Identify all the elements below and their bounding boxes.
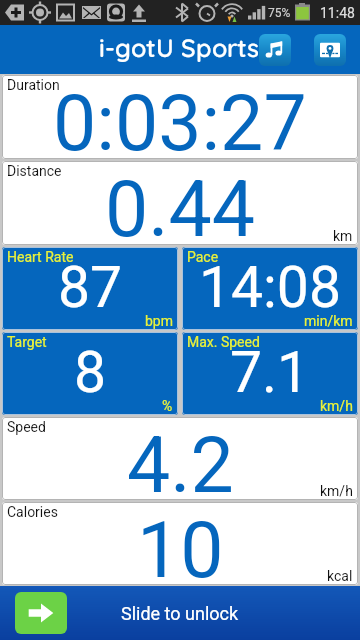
button[interactable]: Heart Rate — [2, 247, 178, 330]
button[interactable]: Calories — [2, 502, 358, 585]
staticText: 0:03:27 — [53, 79, 307, 159]
button[interactable]: Max. Speed — [182, 332, 358, 415]
staticText: 4.2 — [127, 421, 234, 500]
staticText: bpm — [145, 313, 173, 329]
staticText: km — [333, 228, 353, 244]
staticText: Pace — [187, 249, 219, 265]
staticText: 14:08 — [199, 254, 341, 321]
button[interactable]: Duration — [2, 75, 358, 159]
staticText: 87 — [58, 254, 123, 321]
staticText: km/h — [320, 398, 353, 414]
staticText: % — [162, 398, 173, 414]
staticText: Slide to unlock — [121, 603, 239, 624]
staticText: min/km — [304, 313, 353, 329]
staticText: 11:48 — [320, 5, 355, 21]
staticText: 8 — [74, 339, 107, 406]
staticText: Heart Rate — [7, 249, 74, 265]
button[interactable]: Slide to unlock — [0, 586, 360, 640]
staticText: km/h — [320, 483, 353, 499]
button[interactable]: Map — [314, 34, 346, 66]
staticText: 10 — [137, 506, 224, 585]
staticText: Duration — [7, 77, 60, 93]
staticText: Distance — [7, 163, 62, 179]
button[interactable]: Pace — [182, 247, 358, 330]
staticText: Target — [7, 334, 47, 350]
staticText: 7.1 — [230, 339, 310, 406]
staticText: Speed — [7, 419, 46, 435]
staticText: kcal — [327, 568, 353, 584]
button[interactable]: Music — [259, 34, 291, 66]
staticText: 75% — [268, 6, 291, 20]
button[interactable]: Target — [2, 332, 178, 415]
button[interactable]: Slide to unlock — [15, 592, 67, 634]
staticText: 0.44 — [105, 165, 256, 245]
button[interactable]: Speed — [2, 417, 358, 500]
staticText: Calories — [7, 504, 58, 520]
button[interactable]: Distance — [2, 161, 358, 245]
staticText: Max. Speed — [187, 334, 260, 350]
